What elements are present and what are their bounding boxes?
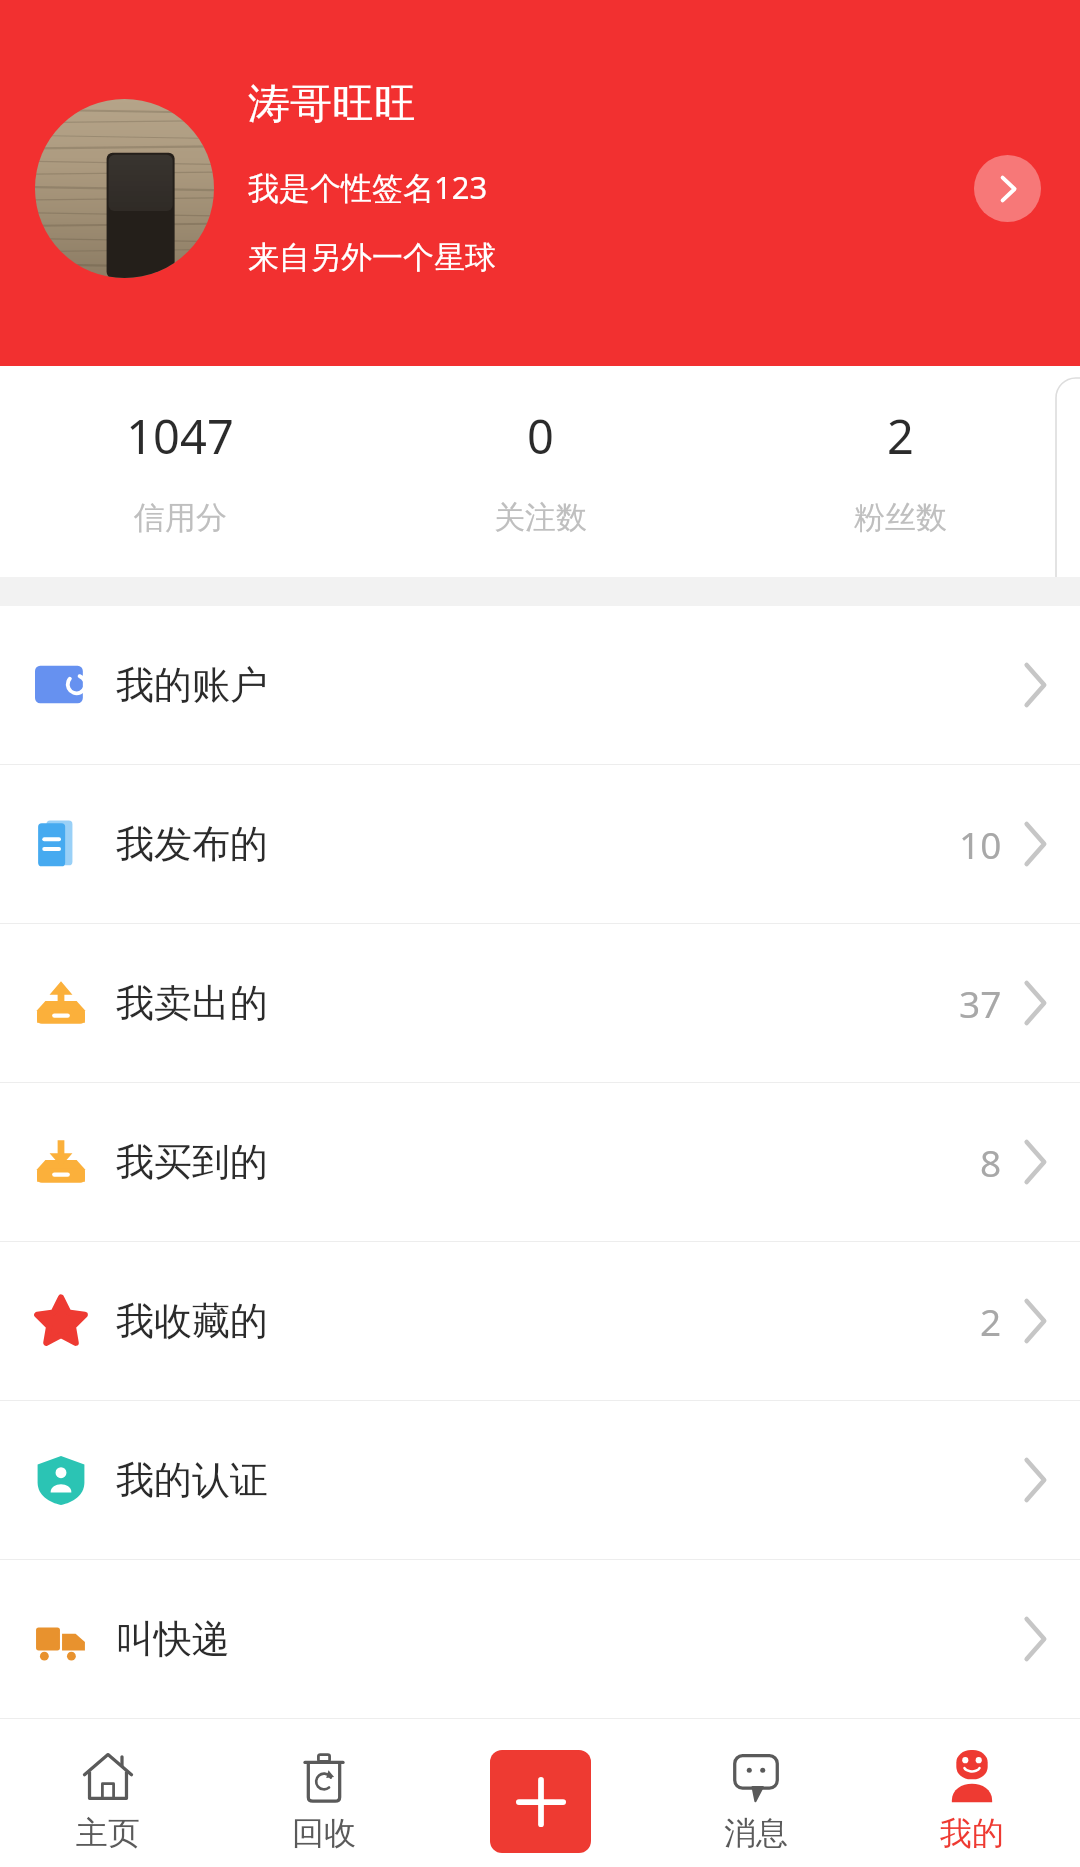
staticText: 我卖出的 xyxy=(116,979,268,1027)
button[interactable]: Post new item xyxy=(490,1750,591,1853)
staticText: 我的认证 xyxy=(116,1456,268,1504)
button[interactable]: Profile photo xyxy=(35,99,214,278)
staticText: 我是个性签名123 xyxy=(248,166,488,208)
staticText: 我的 xyxy=(940,1813,1004,1853)
staticText: 涛哥旺旺 xyxy=(248,78,416,131)
staticText: 回收 xyxy=(292,1813,356,1853)
button[interactable]: Edit profile xyxy=(974,155,1041,222)
staticText: 10 xyxy=(959,819,1002,869)
staticText: 我买到的 xyxy=(116,1138,268,1186)
staticText: 关注数 xyxy=(494,498,587,537)
button[interactable]: 主页 xyxy=(0,1735,216,1867)
staticText: 粉丝数 xyxy=(854,498,947,537)
button[interactable]: 我的认证 xyxy=(0,1401,1080,1559)
button[interactable]: 消息 xyxy=(648,1735,864,1867)
button[interactable]: 我的 xyxy=(864,1735,1080,1867)
staticText: 叫快递 xyxy=(116,1615,230,1663)
button[interactable]: 回收 xyxy=(216,1735,432,1867)
staticText: 0 xyxy=(527,404,554,468)
staticText: 37 xyxy=(959,978,1002,1028)
staticText: 我的账户 xyxy=(116,661,268,709)
staticText: 我收藏的 xyxy=(116,1297,268,1345)
button[interactable]: 我买到的 xyxy=(0,1083,1080,1241)
staticText: 2 xyxy=(980,1296,1002,1346)
button[interactable]: 我卖出的 xyxy=(0,924,1080,1082)
staticText: 来自另外一个星球 xyxy=(248,238,496,277)
button[interactable]: 我收藏的 xyxy=(0,1242,1080,1400)
button[interactable]: 我发布的 xyxy=(0,765,1080,923)
staticText: 主页 xyxy=(76,1813,140,1853)
staticText: 消息 xyxy=(724,1813,788,1853)
staticText: 8 xyxy=(980,1137,1002,1187)
staticText: 2 xyxy=(887,404,914,468)
button[interactable]: 叫快递 xyxy=(0,1560,1080,1718)
button[interactable]: 2 xyxy=(720,366,1080,577)
staticText: 信用分 xyxy=(134,498,227,537)
button[interactable]: 我的账户 xyxy=(0,606,1080,764)
staticText: 我发布的 xyxy=(116,820,268,868)
button[interactable]: 0 xyxy=(360,366,720,577)
staticText: 1047 xyxy=(126,404,234,468)
button[interactable]: 1047 xyxy=(0,366,360,577)
